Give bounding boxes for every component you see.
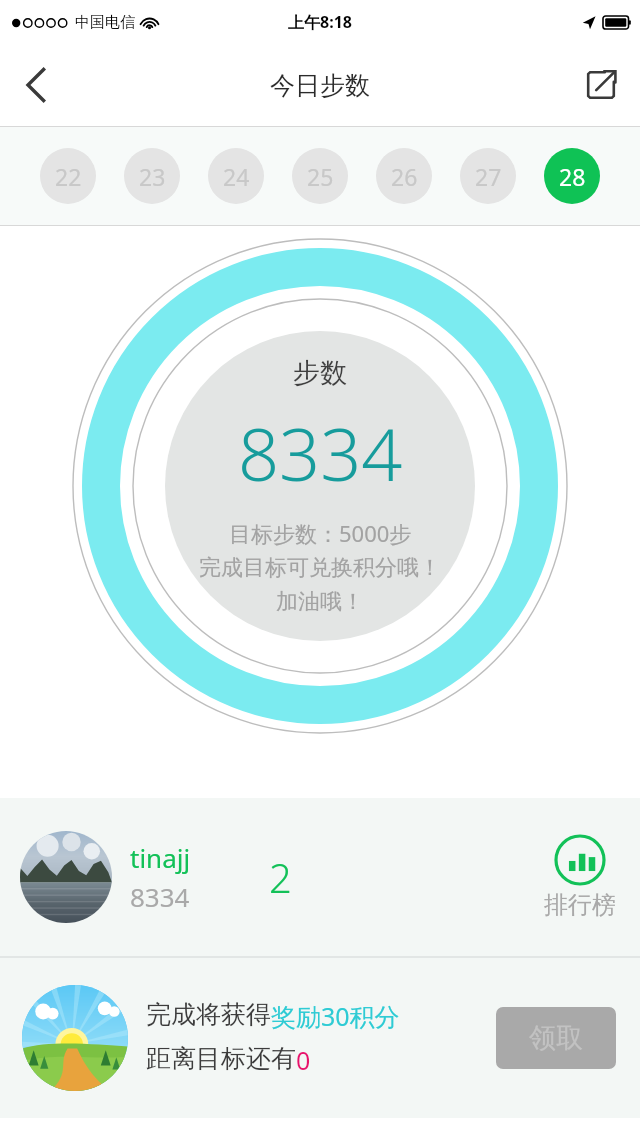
staticText: 26 (391, 161, 418, 192)
staticText: 奖励30积分 (271, 999, 400, 1033)
staticText: 8334 (238, 404, 403, 502)
button[interactable]: tinajj (0, 798, 640, 956)
button[interactable]: Back (8, 57, 64, 113)
staticText: 8334 (130, 879, 190, 914)
staticText: 23 (139, 161, 166, 192)
button[interactable]: 领取 (496, 1007, 616, 1069)
staticText: 领取 (529, 1021, 583, 1055)
button[interactable]: 27 (460, 148, 516, 204)
button[interactable]: 26 (376, 148, 432, 204)
staticText: 中国电信 (75, 13, 135, 32)
staticText: 25 (307, 161, 334, 192)
button[interactable]: 24 (208, 148, 264, 204)
staticText: 距离目标还有 (146, 1043, 296, 1074)
staticText: 24 (223, 161, 250, 192)
staticText: 22 (55, 161, 82, 192)
staticText: tinajj (130, 840, 191, 875)
button[interactable]: 排行榜 (540, 830, 620, 924)
staticText: 2 (269, 850, 292, 904)
staticText: 27 (475, 161, 502, 192)
staticText: 今日步数 (270, 70, 370, 101)
staticText: 28 (559, 161, 586, 192)
staticText: 加油哦！ (276, 588, 364, 616)
staticText: 步数 (293, 356, 347, 390)
staticText: 完成将获得 (146, 999, 271, 1030)
staticText: 上午8:18 (288, 11, 352, 33)
staticText: 0 (296, 1043, 311, 1077)
button[interactable]: 22 (40, 148, 96, 204)
button[interactable]: 25 (292, 148, 348, 204)
staticText: 完成目标可兑换积分哦！ (199, 554, 441, 582)
staticText: 排行榜 (544, 890, 616, 920)
button[interactable]: 23 (124, 148, 180, 204)
button[interactable]: 28 (544, 148, 600, 204)
staticText: 目标步数：5000步 (229, 518, 412, 548)
button[interactable]: Share (576, 60, 626, 110)
